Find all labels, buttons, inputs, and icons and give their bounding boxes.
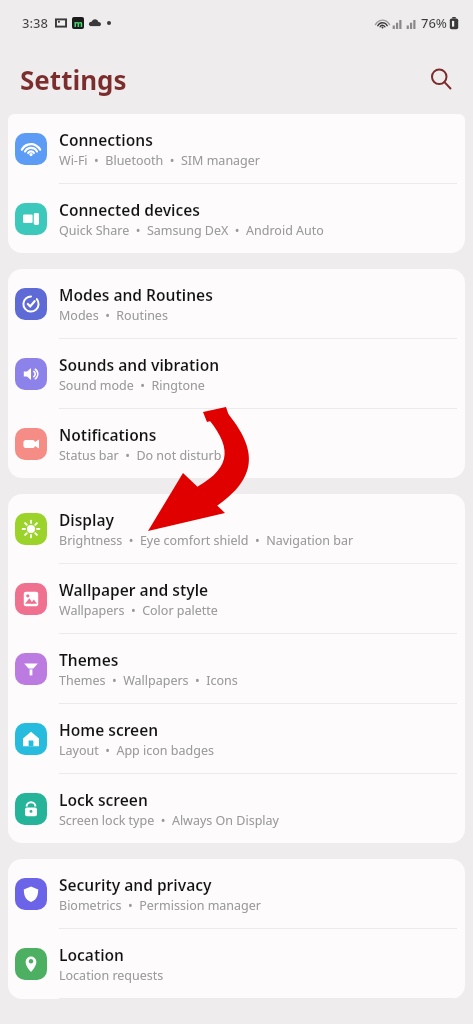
staticText: Modes and Routines xyxy=(59,284,213,305)
staticText: Status bar • Do not disturb xyxy=(59,447,222,464)
staticText: Brightness • Eye comfort shield • Naviga… xyxy=(59,532,354,549)
button[interactable]: Sounds and vibration xyxy=(8,339,465,408)
staticText: Connections xyxy=(59,129,153,150)
staticText: Lock screen xyxy=(59,789,148,810)
button[interactable]: Wallpaper and style xyxy=(8,564,465,633)
button[interactable]: Modes and Routines xyxy=(8,269,465,338)
staticText: Wallpapers • Color palette xyxy=(59,602,218,619)
staticText: Sounds and vibration xyxy=(59,354,220,375)
staticText: Biometrics • Permission manager xyxy=(59,897,262,914)
staticText: Notifications xyxy=(59,424,157,445)
button[interactable]: Notifications xyxy=(8,409,465,478)
staticText: Themes • Wallpapers • Icons xyxy=(59,672,238,689)
button[interactable]: Connected devices xyxy=(8,184,465,253)
staticText: Location xyxy=(59,944,125,965)
button[interactable]: Security and privacy xyxy=(8,859,465,928)
staticText: Display xyxy=(59,509,115,530)
button[interactable]: Lock screen xyxy=(8,774,465,843)
button[interactable]: Themes xyxy=(8,634,465,703)
staticText: Themes xyxy=(59,649,119,670)
staticText: Location requests xyxy=(59,967,164,984)
staticText: Screen lock type • Always On Display xyxy=(59,812,279,829)
staticText: Modes • Routines xyxy=(59,307,168,324)
button[interactable]: Display xyxy=(8,494,465,563)
button[interactable]: Search xyxy=(419,57,463,101)
staticText: Wi-Fi • Bluetooth • SIM manager xyxy=(59,152,261,169)
staticText: 3:38 xyxy=(22,14,48,32)
staticText: Quick Share • Samsung DeX • Android Auto xyxy=(59,222,324,239)
staticText: Security and privacy xyxy=(59,874,212,895)
staticText: 76% xyxy=(421,14,447,32)
button[interactable]: Home screen xyxy=(8,704,465,773)
button[interactable]: Location xyxy=(8,929,465,998)
staticText: Settings xyxy=(20,62,127,97)
staticText: m xyxy=(74,17,83,29)
staticText: Wallpaper and style xyxy=(59,579,209,600)
staticText: Connected devices xyxy=(59,199,200,220)
staticText: Sound mode • Ringtone xyxy=(59,377,205,394)
staticText: Home screen xyxy=(59,719,159,740)
staticText: Layout • App icon badges xyxy=(59,742,214,759)
button[interactable]: Connections xyxy=(8,114,465,183)
